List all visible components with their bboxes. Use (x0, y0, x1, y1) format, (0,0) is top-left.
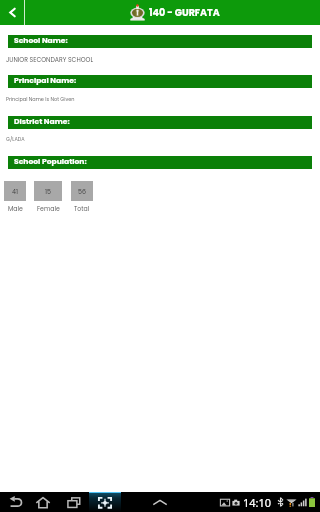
staticText: G/LADA (6, 136, 25, 143)
button[interactable]: School Population: (8, 156, 312, 169)
button[interactable]: Principal Name: (8, 75, 312, 88)
button[interactable]: Back (6, 492, 26, 512)
staticText: School Name: (14, 35, 68, 46)
staticText: Male (8, 204, 23, 213)
button[interactable]: Back (0, 0, 24, 25)
staticText: 41 (12, 187, 18, 196)
button[interactable]: Show notifications (150, 492, 170, 512)
button[interactable]: 56 (71, 181, 93, 201)
staticText: Total (74, 204, 90, 213)
staticText: 56 (78, 187, 86, 196)
staticText: Principal Name: (14, 75, 77, 86)
staticText: 14:10 (243, 495, 272, 510)
button[interactable]: District Name: (8, 116, 312, 129)
button[interactable]: School Name: (8, 35, 312, 48)
staticText: 15 (45, 187, 51, 196)
staticText: Principal Name Is Not Given (6, 96, 75, 103)
staticText: District Name: (14, 116, 70, 127)
staticText: 140 - GURFATA (149, 6, 220, 19)
staticText: JUNIOR SECONDARY SCHOOL (6, 55, 94, 64)
button[interactable]: Recent apps (64, 492, 84, 512)
staticText: School Population: (14, 156, 87, 167)
button[interactable]: Home (33, 492, 53, 512)
button[interactable]: Screenshot (95, 492, 115, 512)
button[interactable]: 41 (4, 181, 26, 201)
button[interactable]: 15 (34, 181, 62, 201)
staticText: Female (37, 204, 60, 213)
